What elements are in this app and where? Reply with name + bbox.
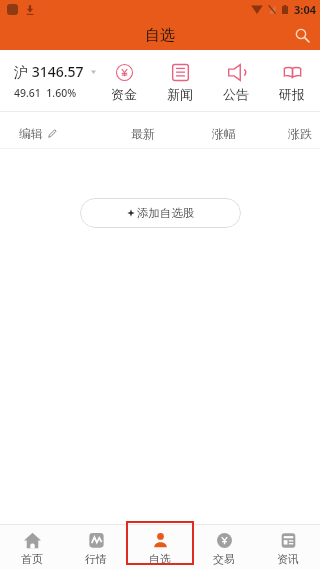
button[interactable]: 自选 [128,525,192,569]
staticText: 首页 [21,552,43,566]
staticText: 研报 [279,86,305,102]
button[interactable]: 公告 [208,64,264,111]
staticText: 公告 [223,86,249,102]
button[interactable]: 涨幅 [201,118,247,148]
staticText: 资金 [111,86,137,102]
button[interactable]: 添加自选股 [80,198,241,228]
button[interactable]: 研报 [264,64,320,111]
button[interactable]: 交易 [192,525,256,569]
button[interactable]: 沪 3146.57 [14,62,96,100]
button[interactable]: 资讯 [256,525,320,569]
staticText: 自选 [145,26,175,45]
staticText: 49.61 1.60% [14,86,77,100]
button[interactable]: 新闻 [152,64,208,111]
staticText: 编辑 [19,126,43,141]
staticText: 行情 [85,552,107,566]
staticText: 沪 3146.57 [14,62,84,81]
staticText: 添加自选股 [137,206,195,220]
staticText: 自选 [149,552,171,566]
button[interactable]: 资金 [96,64,152,111]
button[interactable]: 涨跌 [277,118,320,148]
button[interactable]: 最新 [120,118,166,148]
button[interactable]: 首页 [0,525,64,569]
staticText: 交易 [213,552,235,566]
staticText: 涨跌 [288,126,312,141]
staticText: 最新 [131,126,155,141]
staticText: 资讯 [277,552,299,566]
button[interactable]: 行情 [64,525,128,569]
staticText: 涨幅 [212,126,236,141]
button[interactable]: 编辑 [19,126,57,141]
staticText: 新闻 [167,86,193,102]
staticText: 3:04 [294,2,316,17]
button[interactable]: Search [289,22,315,48]
